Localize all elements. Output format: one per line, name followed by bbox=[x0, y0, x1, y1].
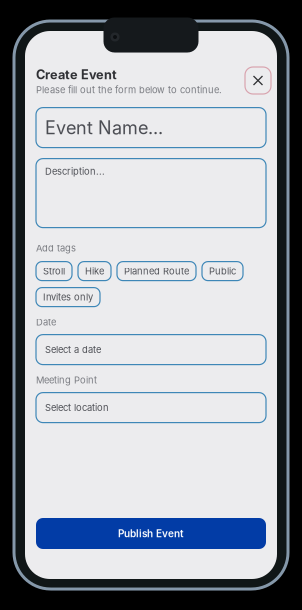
staticText: Event Name... bbox=[45, 117, 163, 138]
button[interactable]: Event Name... bbox=[36, 108, 266, 148]
staticText: Hike bbox=[85, 265, 104, 277]
staticText: Please fill out the form below to contin… bbox=[36, 84, 222, 96]
staticText: Meeting Point bbox=[36, 374, 97, 386]
button[interactable]: Description... bbox=[36, 159, 266, 228]
button[interactable]: Public bbox=[202, 262, 243, 281]
staticText: Create Event bbox=[36, 67, 117, 82]
button[interactable]: Publish Event bbox=[36, 518, 266, 549]
staticText: Description... bbox=[45, 166, 105, 177]
staticText: Add tags bbox=[36, 242, 76, 254]
staticText: Date bbox=[36, 316, 56, 328]
staticText: Select a date bbox=[45, 344, 101, 355]
button[interactable]: Select a date bbox=[36, 335, 266, 365]
staticText: Publish Event bbox=[118, 527, 184, 540]
button[interactable]: Close bbox=[245, 67, 271, 94]
button[interactable]: Invites only bbox=[36, 288, 100, 307]
staticText: Select location bbox=[45, 402, 109, 413]
button[interactable]: Select location bbox=[36, 393, 266, 423]
staticText: Planned Route bbox=[124, 265, 189, 277]
button[interactable]: Planned Route bbox=[117, 262, 196, 281]
staticText: Public bbox=[209, 265, 236, 277]
button[interactable]: Stroll bbox=[36, 262, 72, 281]
button[interactable]: Hike bbox=[78, 262, 111, 281]
staticText: Invites only bbox=[43, 291, 93, 303]
staticText: Stroll bbox=[43, 265, 65, 277]
